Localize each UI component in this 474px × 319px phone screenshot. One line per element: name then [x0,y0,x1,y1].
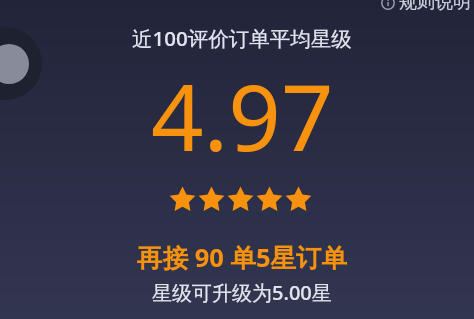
button[interactable]: 规则说明 [381,0,474,14]
button[interactable]: Profile avatar [0,27,42,100]
staticText: 规则说明 [399,0,471,14]
staticText: 再接 90 单5星订单 [137,240,348,275]
staticText: 近100评价订单平均星级 [132,24,352,52]
staticText: 星级可升级为5.00星 [152,279,332,306]
staticText: 4.97 [151,53,334,178]
